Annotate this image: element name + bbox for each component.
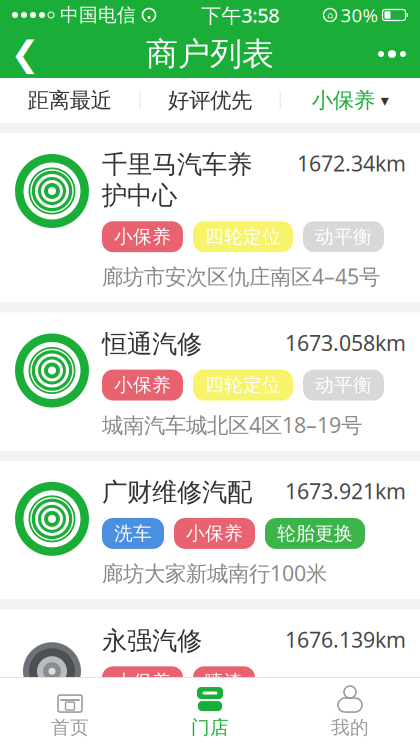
staticText: 小保养 [114,670,171,693]
staticText: 1676.139km [285,625,406,653]
button[interactable]: 更多 [364,30,420,78]
button[interactable]: 门店 [140,681,280,743]
staticText: 小保养 [114,225,171,248]
staticText: 下午3:58 [201,2,279,28]
button[interactable]: 永强汽修 [0,609,420,745]
staticText: 动平衡 [315,374,372,396]
staticText: 30% [340,3,378,27]
staticText: 小保养 [186,522,243,545]
staticText: 廊坊市安次区仇庄南区4–45号 [102,262,380,290]
staticText: 洗车 [114,522,152,545]
staticText: 恒通汽修 [102,328,202,360]
staticText: 廊坊大家新城南行100米 [102,559,327,587]
staticText: 小保养 [312,87,375,114]
button[interactable]: 恒通汽修 [0,312,420,451]
staticText: 小保养 [114,374,171,396]
staticText: 轮胎更换 [277,522,353,545]
staticText: 动平衡 [315,225,372,248]
staticText: 永强汽修 [102,625,202,656]
staticText: 我的 [331,716,369,739]
staticText: ⌂ [327,10,333,20]
button[interactable]: 小保养 [281,78,420,122]
staticText: 城南汽车城北区4区18–19号 [102,410,362,439]
staticText: 首页 [51,716,89,739]
staticText: 自然公园对面 [102,707,228,733]
button[interactable]: 我的 [280,681,420,743]
staticText: 商户列表 [146,34,274,74]
button[interactable]: 首页 [0,681,140,743]
staticText: 1672.34km [297,149,406,177]
staticText: 广财维修汽配 [102,477,252,508]
staticText: 门店 [191,716,229,739]
staticText: 1673.058km [285,328,406,357]
staticText: 中国电信 [60,3,136,26]
staticText: 好评优先 [168,87,252,114]
staticText: 四轮定位 [205,374,281,396]
staticText: 四轮定位 [205,225,281,248]
button[interactable]: 返回 [0,30,50,78]
staticText: 千里马汽车养护中心 [102,149,252,211]
staticText: ❮ [10,34,39,74]
button[interactable]: 千里马汽车养护中心 [0,133,420,302]
staticText: 距离最近 [28,87,112,114]
button[interactable]: 好评优先 [140,78,280,122]
button[interactable]: 广财维修汽配 [0,461,420,599]
staticText: 喷漆 [205,670,243,693]
staticText: ▾ [381,91,389,110]
staticText: 1673.921km [285,477,406,505]
button[interactable]: 距离最近 [0,78,139,122]
